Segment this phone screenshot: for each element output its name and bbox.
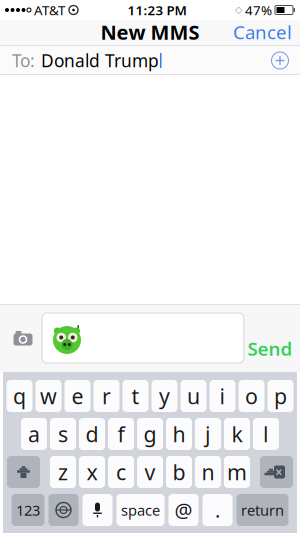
- button[interactable]: space: [116, 494, 164, 526]
- button[interactable]: i: [209, 380, 235, 412]
- staticText: o: [245, 382, 258, 410]
- staticText: c: [116, 458, 126, 486]
- staticText: Donald Trump: [41, 49, 159, 72]
- staticText: x: [86, 458, 97, 486]
- staticText: .: [215, 497, 220, 523]
- button[interactable]: r: [93, 380, 119, 412]
- staticText: l: [263, 420, 269, 448]
- staticText: m: [227, 458, 247, 486]
- staticText: p: [274, 382, 287, 410]
- button[interactable]: c: [108, 456, 134, 488]
- staticText: New MMS: [100, 19, 199, 45]
- staticText: a: [28, 420, 40, 448]
- staticText: h: [172, 420, 185, 448]
- staticText: Send: [247, 336, 292, 361]
- button[interactable]: Add contact: [266, 46, 294, 74]
- staticText: b: [172, 458, 185, 486]
- button[interactable]: g: [137, 418, 163, 450]
- button[interactable]: y: [151, 380, 177, 412]
- staticText: g: [143, 420, 156, 448]
- button[interactable]: Delete: [260, 456, 293, 488]
- staticText: k: [231, 420, 242, 448]
- button[interactable]: Shift: [7, 456, 40, 488]
- button[interactable]: a: [21, 418, 47, 450]
- staticText: To:: [12, 49, 35, 72]
- staticText: t: [131, 382, 139, 410]
- staticText: y: [159, 382, 170, 410]
- staticText: AT&T: [34, 1, 65, 19]
- staticText: e: [71, 382, 83, 410]
- button[interactable]: s: [50, 418, 76, 450]
- button[interactable]: [42, 313, 244, 363]
- button[interactable]: n: [195, 456, 221, 488]
- staticText: space: [121, 500, 160, 520]
- button[interactable]: Camera: [4, 310, 42, 366]
- staticText: w: [40, 382, 57, 410]
- button[interactable]: m: [224, 456, 250, 488]
- button[interactable]: w: [35, 380, 61, 412]
- staticText: 47%: [245, 1, 272, 19]
- button[interactable]: u: [180, 380, 206, 412]
- button[interactable]: .: [202, 494, 232, 526]
- button[interactable]: v: [137, 456, 163, 488]
- staticText: q: [13, 382, 26, 410]
- staticText: Cancel: [233, 20, 292, 44]
- staticText: z: [58, 458, 68, 486]
- staticText: @: [174, 497, 192, 523]
- button[interactable]: x: [79, 456, 105, 488]
- button[interactable]: d: [79, 418, 105, 450]
- staticText: u: [187, 382, 200, 410]
- staticText: 11:23 PM: [127, 1, 186, 19]
- button[interactable]: p: [267, 380, 293, 412]
- button[interactable]: b: [166, 456, 192, 488]
- button[interactable]: q: [6, 380, 32, 412]
- staticText: s: [58, 420, 68, 448]
- button[interactable]: 123: [11, 494, 44, 526]
- staticText: return: [241, 500, 284, 520]
- button[interactable]: e: [64, 380, 90, 412]
- button[interactable]: @: [168, 494, 198, 526]
- staticText: 123: [16, 500, 40, 520]
- button[interactable]: Dictate: [82, 494, 112, 526]
- button[interactable]: l: [253, 418, 279, 450]
- staticText: f: [117, 420, 124, 448]
- button[interactable]: return: [236, 494, 288, 526]
- button[interactable]: z: [50, 456, 76, 488]
- button[interactable]: h: [166, 418, 192, 450]
- button[interactable]: k: [224, 418, 250, 450]
- button[interactable]: Cancel: [225, 14, 300, 50]
- button[interactable]: j: [195, 418, 221, 450]
- staticText: ⬦: [235, 5, 242, 15]
- staticText: n: [201, 458, 214, 486]
- staticText: i: [219, 382, 225, 410]
- button[interactable]: Next keyboard: [48, 494, 78, 526]
- button[interactable]: o: [238, 380, 264, 412]
- button[interactable]: Send: [244, 311, 296, 365]
- staticText: v: [144, 458, 155, 486]
- staticText: ×: [275, 463, 283, 481]
- staticText: j: [205, 420, 211, 448]
- button[interactable]: f: [108, 418, 134, 450]
- staticText: r: [102, 382, 111, 410]
- button[interactable]: t: [122, 380, 148, 412]
- staticText: d: [85, 420, 98, 448]
